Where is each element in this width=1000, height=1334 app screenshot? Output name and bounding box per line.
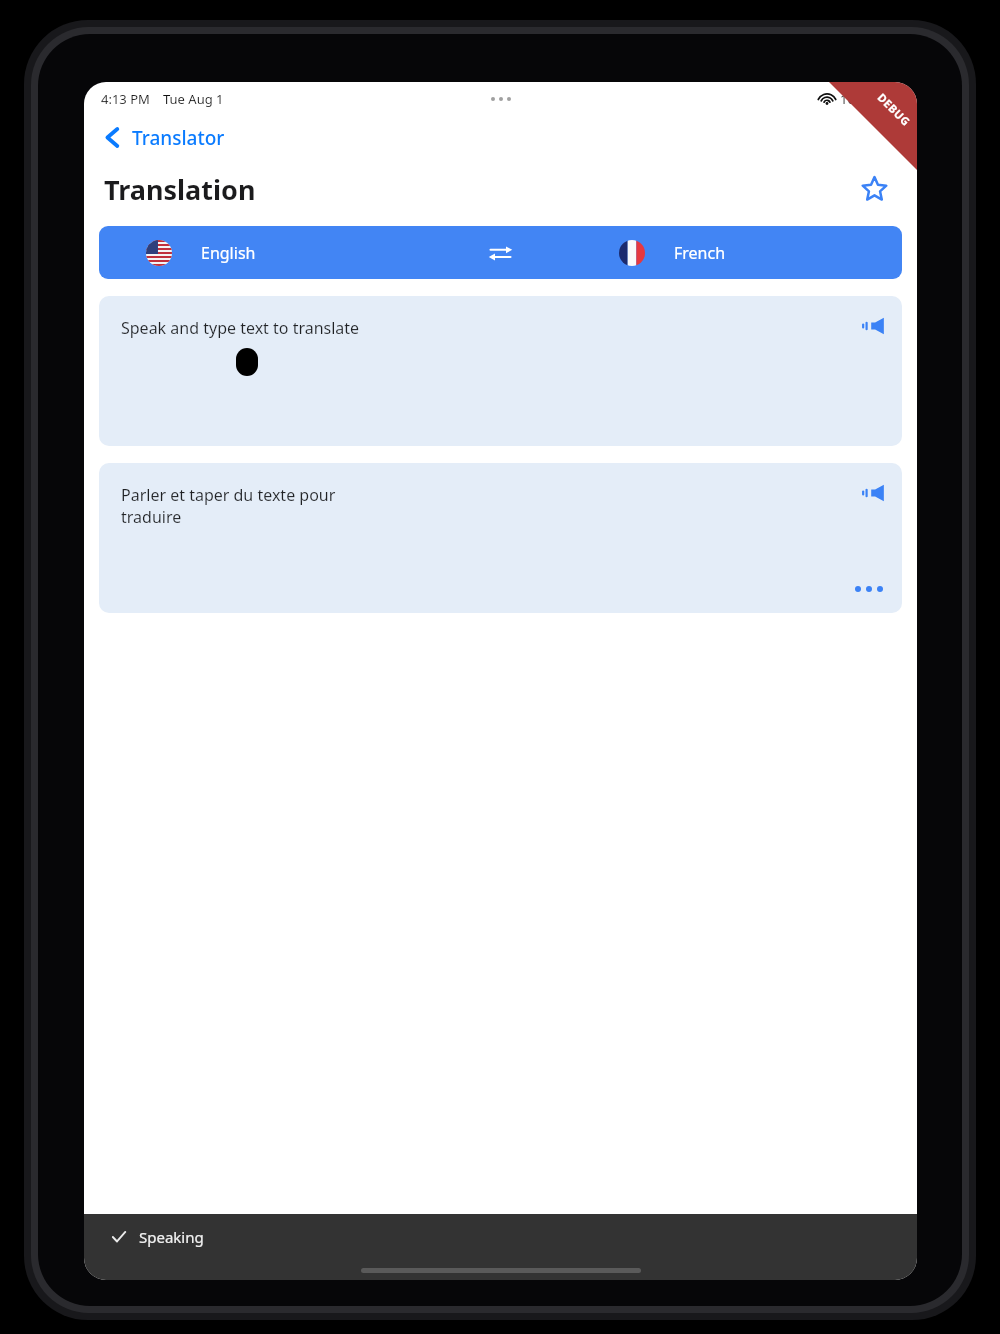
staticText: traduire [121, 506, 182, 528]
staticText: Translation [104, 171, 256, 208]
staticText: DEBUG [875, 90, 914, 129]
staticText: Parler et taper du texte pour [121, 484, 336, 506]
button[interactable]: Parler et taper du texte pour [99, 463, 902, 613]
button[interactable]: French [527, 226, 902, 279]
staticText: French [674, 242, 726, 264]
button[interactable]: Play audio [855, 308, 891, 344]
button[interactable]: Favorite [853, 168, 895, 210]
staticText: 100% [840, 90, 874, 108]
button[interactable]: Translator [84, 115, 917, 160]
button[interactable]: Speak and type text to translate [99, 296, 902, 446]
button[interactable]: English [99, 226, 473, 279]
button[interactable]: Swap languages [473, 226, 527, 279]
staticText: English [201, 242, 256, 264]
staticText: Translator [132, 125, 225, 151]
staticText: Speaking [139, 1227, 204, 1247]
staticText: Speak and type text to translate [121, 317, 360, 339]
button[interactable]: More options [848, 579, 890, 599]
button[interactable]: Play audio [855, 475, 891, 511]
button[interactable]: Speaking [84, 1214, 917, 1260]
staticText: Tue Aug 1 [163, 90, 224, 108]
staticText: 4:13 PM [101, 90, 150, 108]
